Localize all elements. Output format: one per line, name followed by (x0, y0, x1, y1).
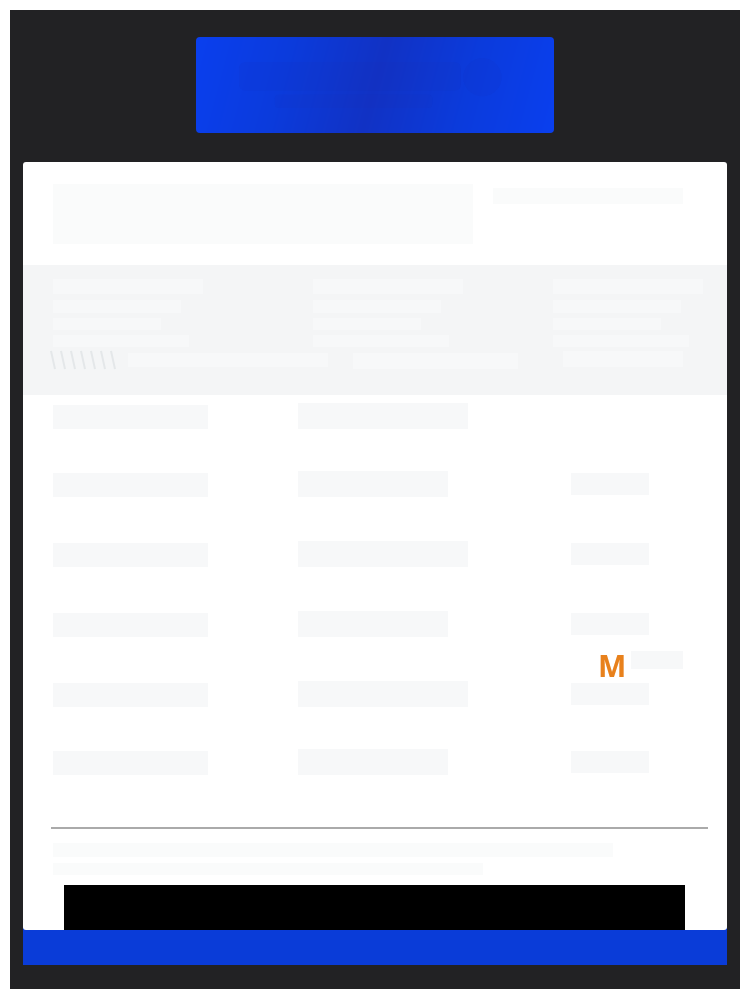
staticText: M (598, 645, 627, 686)
button[interactable]: Promotional banner (196, 37, 554, 133)
